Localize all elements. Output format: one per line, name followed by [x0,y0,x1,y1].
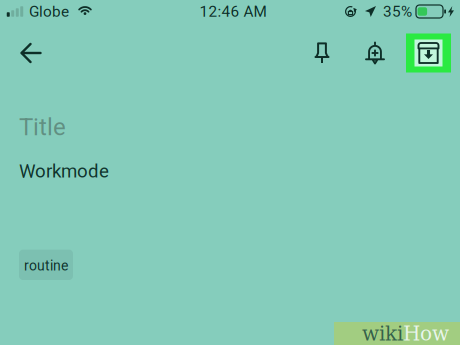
staticText: Workmode [19,160,109,182]
staticText: Title [19,113,66,141]
staticText: How [403,322,449,345]
button[interactable]: Back [0,23,62,83]
button[interactable]: Archive [406,23,451,83]
button[interactable]: Pin note [300,23,344,83]
staticText: routine [24,258,68,274]
staticText: wiki [362,322,403,345]
staticText: 12:46 AM [199,2,266,20]
staticText: Globe [29,2,69,20]
staticText: 35% [383,2,412,20]
button[interactable]: Add reminder [353,23,397,83]
